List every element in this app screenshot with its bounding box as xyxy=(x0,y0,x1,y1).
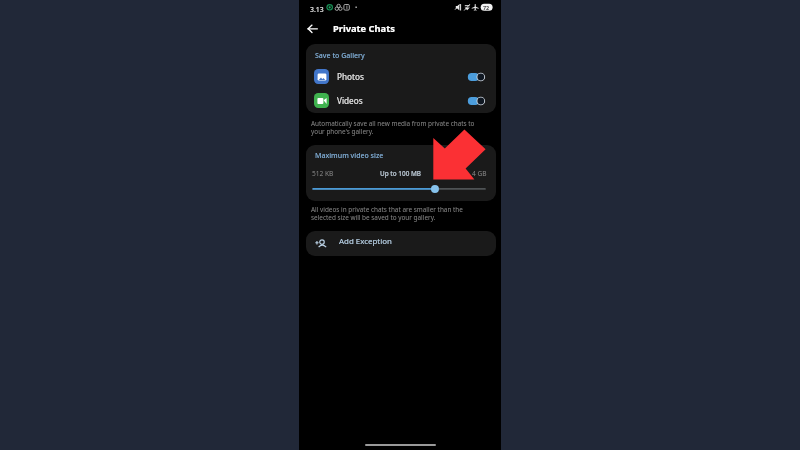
button[interactable]: Photos xyxy=(306,65,496,88)
button[interactable]: Save Videos to gallery, on xyxy=(467,95,485,107)
button[interactable]: Maximum video size slider xyxy=(306,183,496,195)
button[interactable]: Back xyxy=(300,20,318,38)
staticText: Automatically save all new media from pr… xyxy=(311,119,479,136)
staticText: Up to 100 MB xyxy=(380,169,422,178)
staticText: Photos xyxy=(337,71,364,82)
staticText: Save to Gallery xyxy=(315,51,365,61)
button[interactable]: Add Exception xyxy=(306,231,496,256)
staticText: All videos in private chats that are sma… xyxy=(311,205,469,222)
staticText: 512 KB xyxy=(312,169,334,178)
staticText: Add Exception xyxy=(339,236,392,247)
button[interactable]: Videos xyxy=(306,89,496,112)
staticText: Videos xyxy=(337,95,363,106)
staticText: 4 GB xyxy=(472,169,487,178)
button[interactable]: Save Photos to gallery, on xyxy=(467,71,485,83)
staticText: 3.13 xyxy=(310,5,324,14)
staticText: Maximum video size xyxy=(315,151,384,161)
staticText: 72 xyxy=(483,4,490,11)
staticText: Private Chats xyxy=(333,22,395,35)
